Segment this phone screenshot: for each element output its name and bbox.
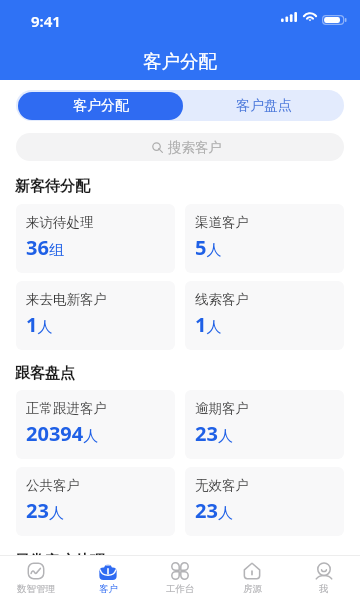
button[interactable]: 公共客户 — [16, 467, 175, 536]
staticText: 日常客户处理 — [15, 552, 105, 571]
staticText: 新客待分配 — [15, 177, 90, 196]
staticText: 9:41 — [31, 11, 61, 31]
button[interactable]: 来访待处理 — [16, 204, 175, 273]
staticText: 工作台 — [166, 583, 195, 595]
button[interactable]: 工作台 — [144, 556, 216, 600]
button[interactable]: 渠道客户 — [185, 204, 344, 273]
button[interactable]: 无效客户 — [185, 467, 344, 536]
staticText: 搜索客户 — [168, 139, 222, 156]
staticText: 客户分配 — [73, 97, 129, 115]
staticText: 5人 — [195, 234, 222, 261]
button[interactable]: 正常跟进客户 — [16, 390, 175, 459]
button[interactable]: 客户分配 — [18, 92, 183, 120]
staticText: 数智管理 — [17, 583, 55, 595]
staticText: 渠道客户 — [195, 214, 249, 231]
button[interactable]: 房源 — [216, 556, 288, 600]
button[interactable]: 线索客户 — [185, 281, 344, 350]
staticText: 客户 — [99, 583, 118, 595]
staticText: 客户盘点 — [236, 97, 292, 115]
staticText: 来去电新客户 — [26, 291, 107, 308]
staticText: 正常跟进客户 — [26, 400, 107, 417]
staticText: 逾期客户 — [195, 400, 249, 417]
staticText: 23人 — [26, 497, 64, 524]
staticText: 36组 — [26, 234, 64, 261]
button[interactable]: 来去电新客户 — [16, 281, 175, 350]
staticText: 客户分配 — [143, 50, 217, 73]
staticText: 线索客户 — [195, 291, 249, 308]
staticText: 公共客户 — [26, 477, 80, 494]
staticText: 我 — [319, 583, 329, 595]
staticText: 23人 — [195, 497, 233, 524]
staticText: 23人 — [195, 420, 233, 447]
button[interactable]: 逾期客户 — [185, 390, 344, 459]
staticText: 20394人 — [26, 420, 99, 447]
button[interactable]: 我 — [288, 556, 360, 600]
staticText: 1人 — [195, 311, 222, 338]
button[interactable]: 数智管理 — [0, 556, 72, 600]
button[interactable]: 搜索客户 — [16, 133, 344, 161]
staticText: 房源 — [243, 583, 262, 595]
button[interactable]: 客户 — [72, 556, 144, 600]
button[interactable]: 客户盘点 — [183, 90, 344, 121]
staticText: 1人 — [26, 311, 53, 338]
staticText: 无效客户 — [195, 477, 249, 494]
staticText: 来访待处理 — [26, 214, 94, 231]
staticText: 跟客盘点 — [15, 364, 75, 383]
